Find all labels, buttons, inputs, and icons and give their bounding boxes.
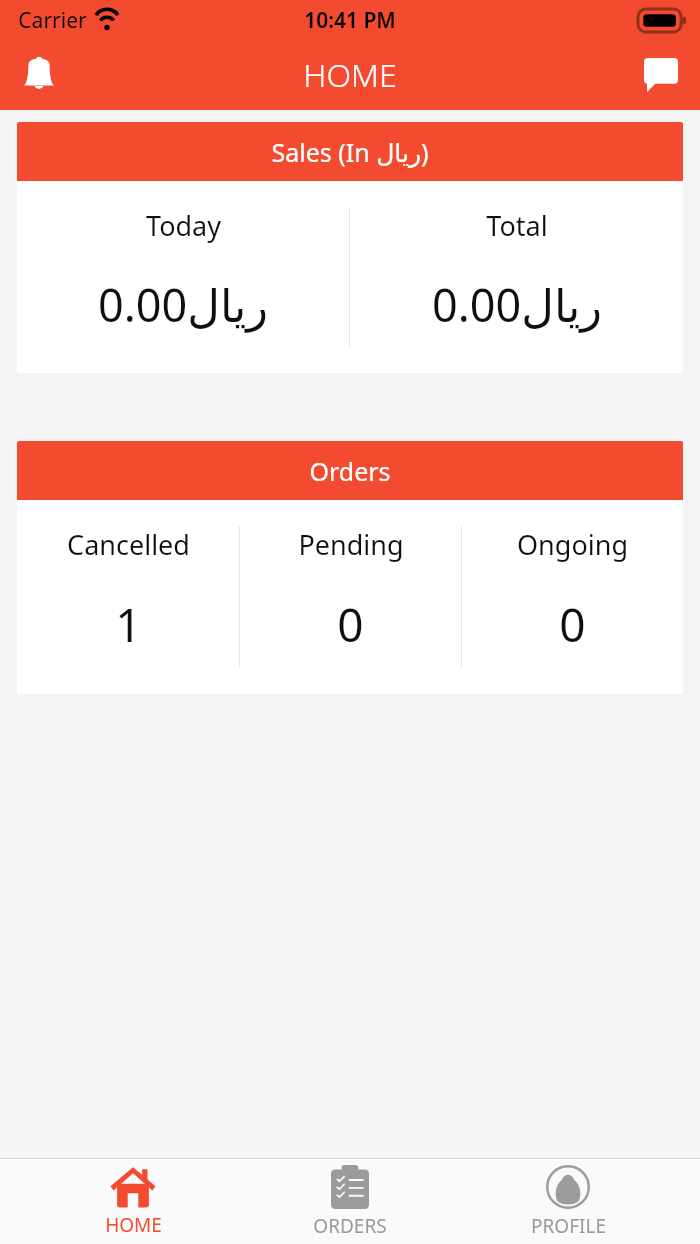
staticText: PROFILE xyxy=(531,1213,606,1239)
staticText: 0 xyxy=(337,593,364,656)
staticText: Today xyxy=(146,207,221,244)
staticText: 1 xyxy=(115,593,142,656)
staticText: Ongoing xyxy=(517,526,628,563)
staticText: Total xyxy=(486,207,548,244)
staticText: Sales (In ريال) xyxy=(271,135,429,169)
button[interactable]: Sales (In ريال) xyxy=(17,122,683,373)
staticText: 0.00ريال xyxy=(98,274,268,335)
staticText: HOME xyxy=(303,53,397,97)
staticText: 0 xyxy=(559,593,586,656)
staticText: Carrier xyxy=(18,6,87,35)
staticText: ORDERS xyxy=(313,1213,387,1239)
staticText: 0.00ريال xyxy=(432,274,602,335)
staticText: Cancelled xyxy=(67,526,190,563)
staticText: Orders xyxy=(309,454,391,488)
button[interactable]: Messages xyxy=(622,40,700,110)
staticText: HOME xyxy=(105,1212,162,1238)
button[interactable]: PROFILE xyxy=(483,1159,653,1244)
button[interactable]: Orders xyxy=(17,441,683,694)
staticText: 10:41 PM xyxy=(304,6,396,35)
button[interactable]: HOME xyxy=(48,1159,218,1244)
staticText: Pending xyxy=(298,526,404,563)
button[interactable]: ORDERS xyxy=(265,1159,435,1244)
button[interactable]: Notifications xyxy=(0,40,78,110)
